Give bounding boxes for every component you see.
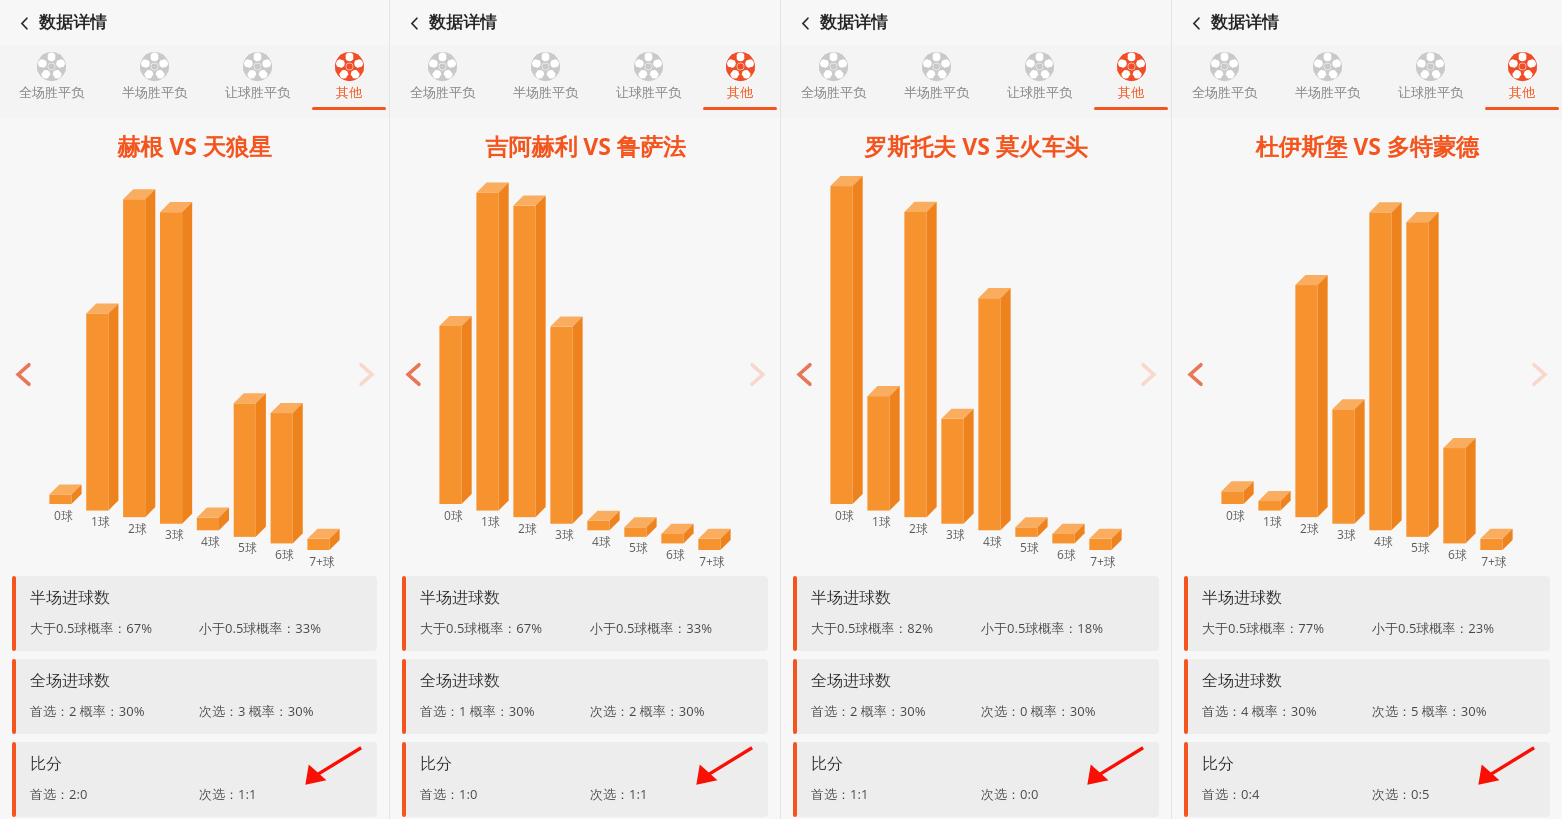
staticText: 首选：0:4 — [1202, 785, 1372, 803]
staticText: 比分 — [420, 754, 452, 774]
staticText: 比分 — [1202, 754, 1234, 774]
staticText: 6球 — [1448, 546, 1467, 562]
button[interactable]: 让球胜平负 — [1379, 45, 1482, 118]
staticText: 次选：0 概率：30% — [981, 702, 1151, 720]
staticText: 半场胜平负 — [1295, 84, 1360, 100]
staticText: 其他 — [727, 84, 753, 100]
staticText: 全场胜平负 — [410, 84, 475, 100]
button[interactable]: 比分 — [797, 742, 1159, 817]
button[interactable]: Back — [401, 10, 427, 36]
staticText: 5球 — [1020, 539, 1039, 555]
staticText: 让球胜平负 — [225, 84, 290, 100]
staticText: 次选：1:1 — [199, 785, 369, 803]
staticText: 首选：2:0 — [30, 785, 199, 803]
staticText: 首选：2 概率：30% — [30, 702, 199, 720]
button[interactable]: Next match — [1518, 353, 1560, 395]
staticText: 半场进球数 — [420, 588, 500, 608]
button[interactable]: 让球胜平负 — [988, 45, 1091, 118]
staticText: 全场胜平负 — [19, 84, 84, 100]
staticText: 首选：1:1 — [811, 785, 981, 803]
staticText: 次选：1:1 — [590, 785, 760, 803]
staticText: 让球胜平负 — [1398, 84, 1463, 100]
staticText: 4球 — [1374, 533, 1393, 549]
button[interactable]: 半场胜平负 — [103, 45, 206, 118]
button[interactable]: 半场进球数 — [1188, 576, 1550, 651]
button[interactable]: 全场胜平负 — [0, 45, 103, 118]
staticText: 全场进球数 — [420, 671, 500, 691]
button[interactable]: 全场进球数 — [1188, 659, 1550, 734]
button[interactable]: 全场进球数 — [797, 659, 1159, 734]
staticText: 让球胜平负 — [1007, 84, 1072, 100]
button[interactable]: Next match — [736, 353, 778, 395]
staticText: 次选：3 概率：30% — [199, 702, 369, 720]
button[interactable]: Back — [11, 10, 37, 36]
staticText: 7+球 — [1481, 553, 1507, 569]
staticText: 半场胜平负 — [122, 84, 187, 100]
staticText: 6球 — [275, 546, 294, 562]
staticText: 大于0.5球概率：67% — [30, 619, 199, 637]
staticText: 其他 — [1509, 84, 1535, 100]
button[interactable]: 半场进球数 — [16, 576, 377, 651]
staticText: 大于0.5球概率：77% — [1202, 619, 1372, 637]
staticText: 罗斯托夫 VS 莫火车头 — [864, 130, 1088, 161]
button[interactable]: 全场进球数 — [16, 659, 377, 734]
staticText: 6球 — [666, 546, 685, 562]
staticText: 数据详情 — [820, 12, 888, 33]
staticText: 半场进球数 — [30, 588, 110, 608]
button[interactable]: Previous match — [392, 353, 434, 395]
staticText: 7+球 — [699, 553, 725, 569]
staticText: 杜伊斯堡 VS 多特蒙德 — [1255, 130, 1479, 161]
staticText: 4球 — [201, 533, 220, 549]
button[interactable]: 半场胜平负 — [1276, 45, 1379, 118]
staticText: 比分 — [811, 754, 843, 774]
button[interactable]: 半场进球数 — [406, 576, 768, 651]
button[interactable]: 全场胜平负 — [390, 45, 494, 118]
button[interactable]: 半场胜平负 — [494, 45, 597, 118]
staticText: 次选：5 概率：30% — [1372, 702, 1542, 720]
staticText: 全场进球数 — [1202, 671, 1282, 691]
button[interactable]: 全场胜平负 — [781, 45, 885, 118]
staticText: 赫根 VS 天狼星 — [117, 130, 272, 161]
staticText: 7+球 — [1090, 553, 1116, 569]
staticText: 0球 — [1226, 507, 1245, 523]
button[interactable]: 其他 — [1091, 45, 1171, 118]
button[interactable]: 其他 — [309, 45, 389, 118]
button[interactable]: 全场进球数 — [406, 659, 768, 734]
button[interactable]: 半场胜平负 — [885, 45, 988, 118]
staticText: 全场胜平负 — [801, 84, 866, 100]
button[interactable]: 让球胜平负 — [597, 45, 700, 118]
staticText: 2球 — [518, 520, 537, 536]
staticText: 2球 — [909, 520, 928, 536]
button[interactable]: Back — [1183, 10, 1209, 36]
button[interactable]: Next match — [345, 353, 387, 395]
staticText: 5球 — [238, 539, 257, 555]
button[interactable]: 比分 — [16, 742, 377, 817]
staticText: 吉阿赫利 VS 鲁萨法 — [485, 130, 686, 161]
button[interactable]: Next match — [1127, 353, 1169, 395]
staticText: 首选：2 概率：30% — [811, 702, 981, 720]
button[interactable]: Previous match — [783, 353, 825, 395]
staticText: 7+球 — [309, 553, 335, 569]
button[interactable]: 比分 — [1188, 742, 1550, 817]
staticText: 3球 — [165, 526, 184, 542]
button[interactable]: Previous match — [1174, 353, 1216, 395]
staticText: 其他 — [1118, 84, 1144, 100]
button[interactable]: 全场胜平负 — [1172, 45, 1276, 118]
staticText: 2球 — [1300, 520, 1319, 536]
staticText: 小于0.5球概率：33% — [199, 619, 369, 637]
button[interactable]: Previous match — [2, 353, 44, 395]
button[interactable]: 其他 — [1482, 45, 1562, 118]
staticText: 5球 — [1411, 539, 1430, 555]
staticText: 比分 — [30, 754, 62, 774]
staticText: 首选：1:0 — [420, 785, 590, 803]
staticText: 数据详情 — [1211, 12, 1279, 33]
button[interactable]: 让球胜平负 — [206, 45, 309, 118]
button[interactable]: 半场进球数 — [797, 576, 1159, 651]
staticText: 全场进球数 — [30, 671, 110, 691]
staticText: 1球 — [91, 513, 110, 529]
button[interactable]: 其他 — [700, 45, 780, 118]
button[interactable]: 比分 — [406, 742, 768, 817]
button[interactable]: Back — [792, 10, 818, 36]
staticText: 4球 — [592, 533, 611, 549]
staticText: 小于0.5球概率：33% — [590, 619, 760, 637]
